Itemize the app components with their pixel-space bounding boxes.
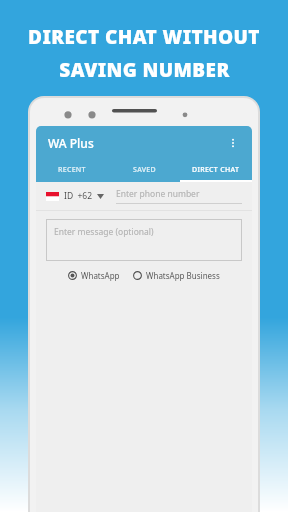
button[interactable]: Enter phone number	[116, 188, 242, 204]
staticText: WhatsApp Business	[146, 270, 220, 281]
button[interactable]: DIRECT CHAT	[180, 160, 252, 180]
staticText: SAVED	[133, 165, 156, 175]
button[interactable]: WhatsApp	[68, 270, 120, 281]
button[interactable]: WhatsApp Business	[133, 270, 220, 281]
staticText: ID +62	[64, 190, 93, 202]
staticText: Enter message (optional)	[54, 226, 154, 238]
staticText: WhatsApp	[81, 270, 120, 281]
button[interactable]: Enter message (optional)	[46, 219, 242, 261]
staticText: SAVING NUMBER	[59, 57, 230, 83]
staticText: DIRECT CHAT WITHOUT	[28, 24, 260, 50]
button[interactable]: More options	[222, 132, 244, 154]
button[interactable]: SAVED	[108, 160, 180, 180]
staticText: RECENT	[58, 165, 86, 175]
button[interactable]: RECENT	[36, 160, 108, 180]
button[interactable]: ID +62	[46, 190, 104, 202]
staticText: WA Plus	[48, 135, 94, 151]
staticText: Enter phone number	[116, 188, 200, 200]
staticText: DIRECT CHAT	[192, 165, 240, 175]
